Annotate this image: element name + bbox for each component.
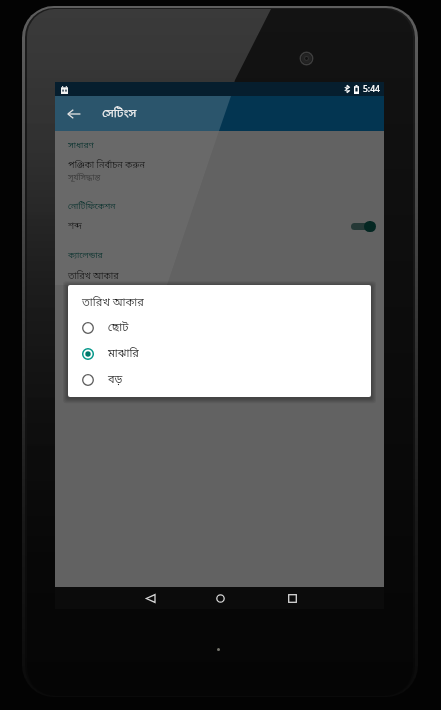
button[interactable]: Home [207, 587, 233, 609]
staticText: তারিখ আকার [68, 271, 119, 283]
button[interactable]: মাঝারি [68, 341, 371, 367]
staticText: নোটিফিকেশন [68, 201, 116, 212]
staticText: সেটিংস [102, 106, 137, 121]
button[interactable] [55, 157, 384, 187]
button[interactable]: Back [137, 587, 163, 609]
staticText: ক্যালেন্ডার [68, 250, 103, 261]
staticText: সাধারণ [68, 140, 94, 151]
button[interactable]: Back [60, 100, 88, 128]
staticText: ছোট [108, 321, 129, 336]
button[interactable] [55, 267, 384, 291]
staticText: 5:44 [363, 83, 380, 95]
staticText: বড় [108, 373, 123, 388]
button[interactable] [55, 216, 384, 240]
staticText: সূর্যসিদ্ধান্ত [68, 173, 101, 184]
button[interactable]: বড় [68, 367, 371, 393]
staticText: শব্দ [68, 221, 82, 233]
staticText: পঞ্জিকা নির্বাচন করুন [68, 160, 145, 172]
staticText: মাঝারি [108, 347, 139, 362]
button[interactable]: ছোট [68, 315, 371, 341]
button[interactable]: Recents [279, 587, 305, 609]
staticText: তারিখ আকার [82, 296, 144, 311]
